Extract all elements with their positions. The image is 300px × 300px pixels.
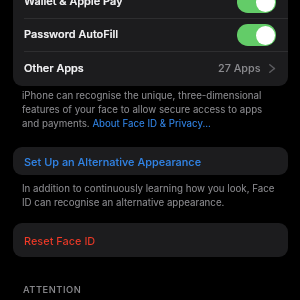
staticText: In addition to continuously learning how…	[22, 183, 280, 209]
staticText: Set Up an Alternative Appearance	[24, 155, 202, 168]
button[interactable]: Toggle Password AutoFill	[237, 24, 276, 46]
staticText: Wallet & Apple Pay	[24, 0, 123, 7]
button[interactable]: Other Apps	[13, 51, 288, 86]
button[interactable]: Toggle Wallet & Apple Pay	[237, 0, 276, 13]
staticText: Password AutoFill	[24, 27, 118, 40]
button[interactable]: Set Up an Alternative Appearance	[13, 147, 288, 175]
button[interactable]: Reset Face ID	[13, 223, 288, 257]
staticText: iPhone can recognise the unique, three-d…	[22, 90, 272, 130]
button[interactable]: Password AutoFill	[13, 18, 288, 51]
staticText: ATTENTION	[23, 284, 82, 295]
staticText: Reset Face ID	[24, 234, 96, 247]
staticText: Other Apps	[24, 61, 84, 74]
staticText: 27 Apps	[218, 62, 261, 75]
button[interactable]: Wallet & Apple Pay	[13, 0, 288, 18]
